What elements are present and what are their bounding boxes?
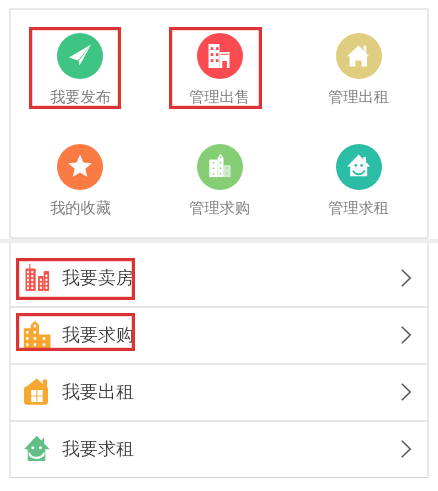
- button[interactable]: 我要出租: [10, 364, 428, 421]
- button[interactable]: 我要求购: [10, 307, 428, 364]
- other: 进入: [401, 383, 411, 401]
- button[interactable]: 我要卖房: [10, 250, 428, 307]
- staticText: 我要求租: [62, 438, 134, 461]
- staticText: 管理出租: [328, 87, 389, 106]
- staticText: 我要出租: [62, 381, 134, 404]
- button[interactable]: 管理出租: [289, 33, 428, 107]
- button[interactable]: 我要求租: [10, 421, 428, 478]
- other: 进入: [401, 269, 411, 287]
- staticText: 管理求购: [189, 198, 250, 217]
- staticText: 我的收藏: [50, 198, 111, 217]
- button[interactable]: 我的收藏: [10, 144, 150, 218]
- button[interactable]: 管理求租: [289, 144, 428, 218]
- staticText: 我要卖房: [62, 267, 134, 290]
- button[interactable]: 管理出售: [150, 33, 289, 107]
- other: 进入: [401, 440, 411, 458]
- staticText: 我要求购: [62, 324, 134, 347]
- other: 进入: [401, 326, 411, 344]
- staticText: 我要发布: [50, 87, 111, 106]
- staticText: 管理出售: [189, 87, 250, 106]
- button[interactable]: 我要发布: [10, 33, 150, 107]
- button[interactable]: 管理求购: [150, 144, 289, 218]
- staticText: 管理求租: [328, 198, 389, 217]
